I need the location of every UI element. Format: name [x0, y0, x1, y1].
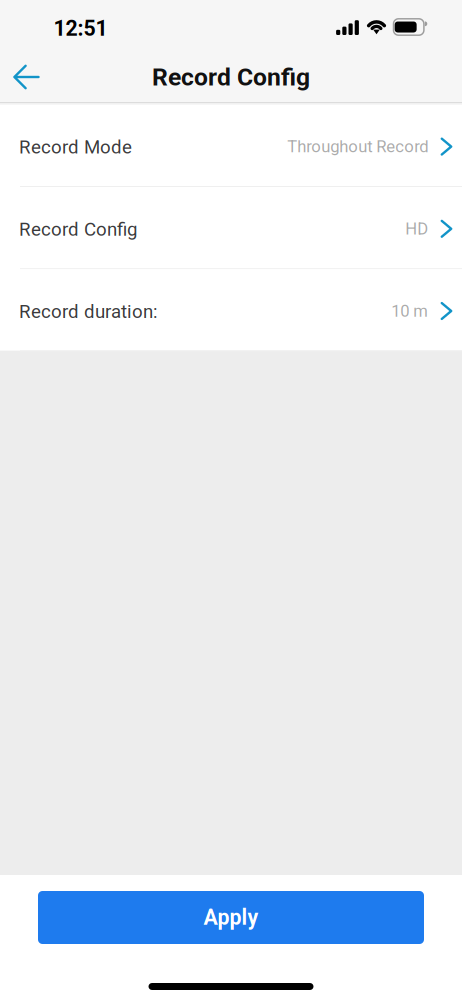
staticText: 10 m: [391, 301, 428, 321]
button[interactable]: Record Config: [0, 187, 462, 268]
staticText: 12:51: [53, 16, 107, 41]
staticText: Record duration:: [19, 301, 158, 323]
button[interactable]: Back: [0, 53, 53, 101]
staticText: Record Mode: [19, 136, 132, 158]
staticText: Throughout Record: [287, 137, 428, 156]
staticText: Apply: [203, 905, 258, 930]
button[interactable]: Apply: [38, 891, 424, 944]
staticText: Record Config: [152, 62, 310, 91]
button[interactable]: Record duration:: [0, 269, 462, 350]
staticText: Record Config: [19, 218, 137, 240]
button[interactable]: Record Mode: [0, 105, 462, 186]
staticText: HD: [405, 219, 428, 238]
